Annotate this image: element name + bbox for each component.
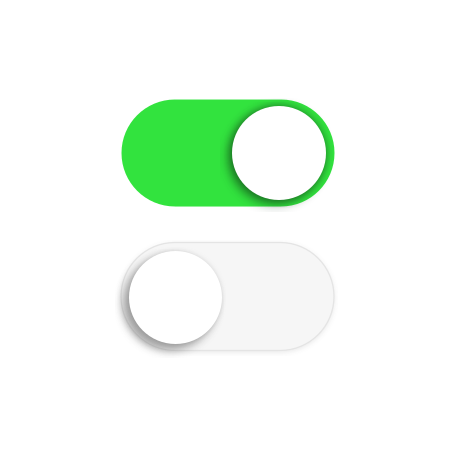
button[interactable]: Switch off (121, 242, 334, 350)
button[interactable]: Switch on (121, 99, 334, 206)
